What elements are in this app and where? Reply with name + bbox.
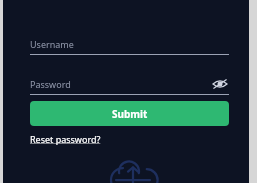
button[interactable]: Reset password? [30, 132, 101, 146]
button[interactable]: Password [30, 76, 229, 92]
button[interactable]: Submit [30, 101, 229, 126]
staticText: Password [30, 78, 71, 90]
staticText: Submit [112, 107, 148, 121]
staticText: Reset password? [30, 133, 101, 145]
button[interactable]: Username [30, 36, 229, 52]
staticText: Username [30, 38, 74, 50]
button[interactable]: Show password [211, 76, 229, 92]
